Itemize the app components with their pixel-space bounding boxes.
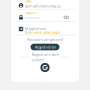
staticText: E-Mail bbox=[25, 0, 32, 3]
button[interactable]: E-Mail bbox=[19, 0, 76, 9]
button[interactable]: Mit Google anmelden bbox=[40, 63, 50, 72]
staticText: Registriere dich schnell bbox=[31, 52, 58, 62]
button[interactable]: Registrieren bbox=[30, 44, 59, 50]
staticText: Registrieren bbox=[34, 44, 55, 50]
staticText: Passwort bbox=[25, 11, 36, 15]
staticText: Administration login bbox=[25, 29, 60, 35]
staticText: demo@shementa.eu bbox=[25, 3, 61, 9]
button[interactable]: Passwort vergessen? bbox=[14, 36, 75, 43]
staticText: •••••••• bbox=[25, 15, 41, 21]
button[interactable]: Passwort bbox=[19, 11, 76, 20]
staticText: Mitglied seit bbox=[25, 26, 46, 31]
button[interactable]: Mitglied seit bbox=[19, 25, 76, 34]
staticText: Passwort vergessen? bbox=[26, 37, 63, 42]
